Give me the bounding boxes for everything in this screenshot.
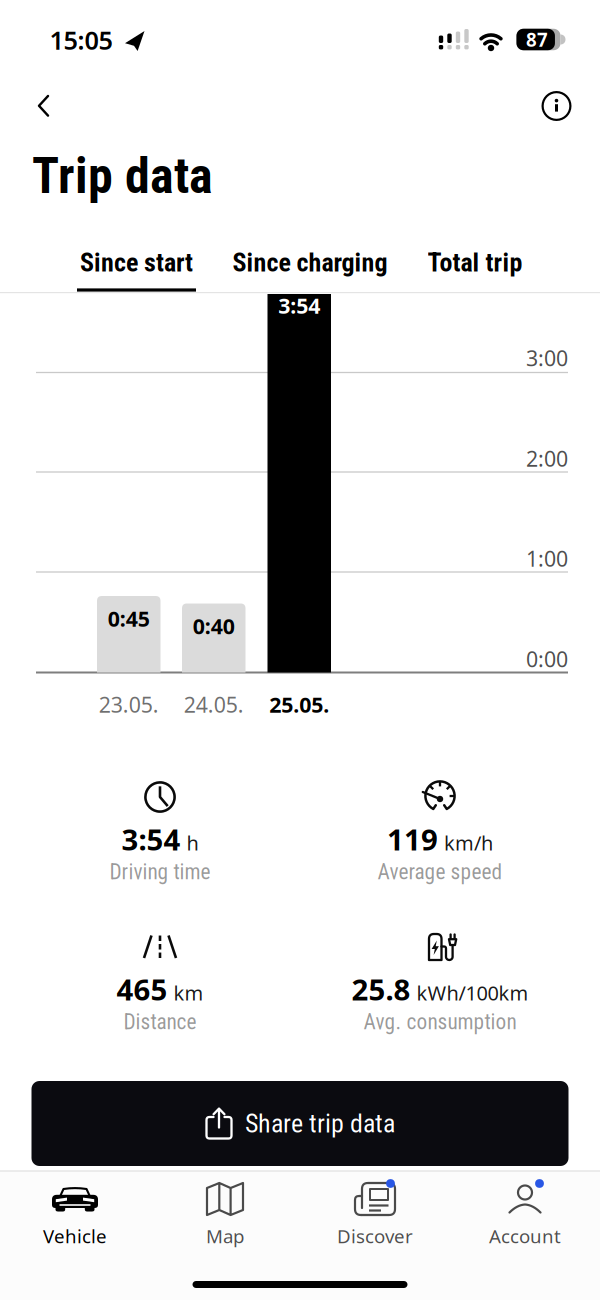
staticText: 3:54 <box>278 291 320 320</box>
button[interactable]: Back <box>22 84 66 128</box>
staticText: h <box>186 829 198 856</box>
button[interactable]: Account <box>450 1172 600 1264</box>
button[interactable]: Info <box>541 91 571 121</box>
staticText: 119 <box>387 819 438 858</box>
staticText: 2:00 <box>526 444 568 473</box>
staticText: 23.05. <box>99 690 159 719</box>
staticText: Distance <box>123 1009 196 1034</box>
staticText: 465 <box>116 969 167 1008</box>
staticText: km/h <box>444 829 493 856</box>
staticText: 0:45 <box>108 604 150 633</box>
staticText: Average speed <box>377 859 502 884</box>
staticText: Share trip data <box>245 1108 395 1139</box>
staticText: kWh/100km <box>416 979 528 1006</box>
staticText: 25.05. <box>269 690 329 719</box>
staticText: 25.8 <box>351 969 410 1008</box>
staticText: Trip data <box>32 147 213 205</box>
staticText: Map <box>206 1224 244 1248</box>
staticText: 0:40 <box>193 612 235 640</box>
staticText: Account <box>489 1224 561 1248</box>
button[interactable]: Since start <box>74 234 199 290</box>
staticText: 3:54 <box>121 819 180 858</box>
staticText: 3:00 <box>526 344 568 372</box>
button[interactable]: Total trip <box>422 234 527 290</box>
button[interactable]: Vehicle <box>0 1172 150 1264</box>
staticText: Vehicle <box>43 1224 107 1248</box>
staticText: Driving time <box>109 859 210 884</box>
button[interactable]: Since charging <box>227 234 392 290</box>
staticText: 15:05 <box>49 23 112 57</box>
button[interactable]: Discover <box>300 1172 450 1264</box>
button[interactable]: Share trip data <box>31 1081 568 1166</box>
staticText: 0:00 <box>526 645 568 673</box>
staticText: Since start <box>80 247 193 278</box>
staticText: Total trip <box>427 247 522 278</box>
button[interactable]: Map <box>150 1172 300 1264</box>
staticText: 87 <box>526 27 548 52</box>
staticText: Discover <box>337 1224 413 1248</box>
staticText: km <box>173 979 203 1006</box>
staticText: Since charging <box>232 247 387 278</box>
staticText: 1:00 <box>526 544 568 573</box>
staticText: 24.05. <box>184 690 244 719</box>
staticText: Avg. consumption <box>363 1009 516 1034</box>
